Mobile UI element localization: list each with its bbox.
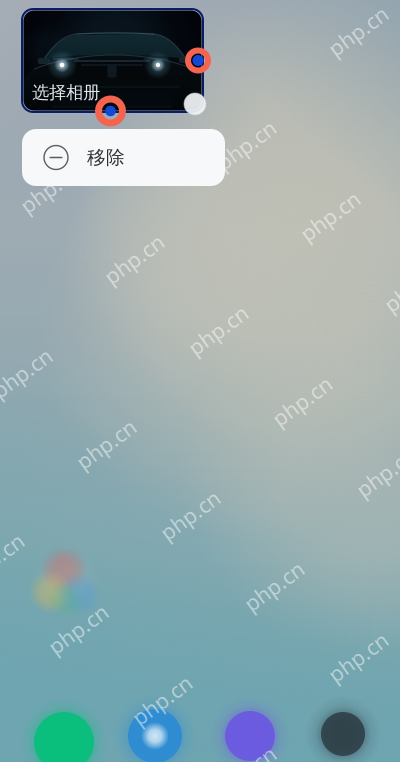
staticText: php.cn bbox=[128, 60, 196, 88]
staticText: php.cn bbox=[100, 245, 168, 273]
staticText: php.cn bbox=[380, 273, 400, 301]
staticText: php.cn bbox=[212, 757, 280, 762]
staticText: php.cn bbox=[184, 316, 252, 344]
staticText: php.cn bbox=[128, 686, 196, 714]
staticText: php.cn bbox=[296, 202, 364, 230]
staticText: php.cn bbox=[16, 174, 84, 202]
staticText: php.cn bbox=[0, 359, 56, 387]
staticText: php.cn bbox=[156, 501, 224, 529]
staticText: 选择相册 bbox=[32, 82, 100, 103]
staticText: php.cn bbox=[44, 615, 112, 643]
staticText: php.cn bbox=[352, 458, 400, 486]
button[interactable]: 移除 bbox=[22, 129, 225, 186]
staticText: php.cn bbox=[324, 17, 392, 45]
staticText: php.cn bbox=[268, 387, 336, 415]
staticText: php.cn bbox=[324, 643, 392, 671]
button[interactable]: 选择相册 bbox=[22, 9, 203, 112]
staticText: php.cn bbox=[212, 131, 280, 159]
staticText: php.cn bbox=[72, 430, 140, 458]
staticText: php.cn bbox=[0, 544, 28, 572]
staticText: 移除 bbox=[87, 146, 125, 169]
staticText: php.cn bbox=[240, 572, 308, 600]
